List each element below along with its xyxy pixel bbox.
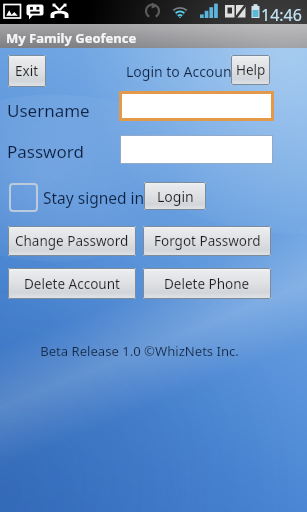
staticText: My Family Geofence — [6, 29, 137, 47]
staticText: Change Password — [15, 232, 129, 250]
staticText: Login — [157, 187, 194, 206]
button[interactable]: Change Password — [8, 226, 136, 256]
staticText: Password — [7, 140, 84, 163]
button[interactable]: Delete Account — [8, 268, 136, 299]
staticText: Beta Release 1.0 ©WhizNets Inc. — [8, 342, 271, 360]
button[interactable]: Stay signed in checkbox — [9, 183, 38, 212]
staticText: Forgot Password — [154, 232, 261, 250]
staticText: 14:46 — [261, 4, 302, 26]
button[interactable]: Exit — [8, 55, 46, 87]
button[interactable]: Delete Phone — [143, 268, 271, 299]
staticText: Username — [7, 99, 90, 122]
staticText: Delete Account — [24, 275, 120, 293]
staticText: Help — [236, 61, 266, 79]
button[interactable]: Login — [144, 182, 206, 210]
staticText: Delete Phone — [164, 275, 250, 293]
staticText: Exit — [15, 62, 39, 80]
button[interactable]: Help — [231, 55, 270, 85]
button[interactable]: Forgot Password — [143, 226, 271, 256]
staticText: Stay signed in — [43, 187, 145, 208]
staticText: Login to Account — [126, 62, 237, 81]
